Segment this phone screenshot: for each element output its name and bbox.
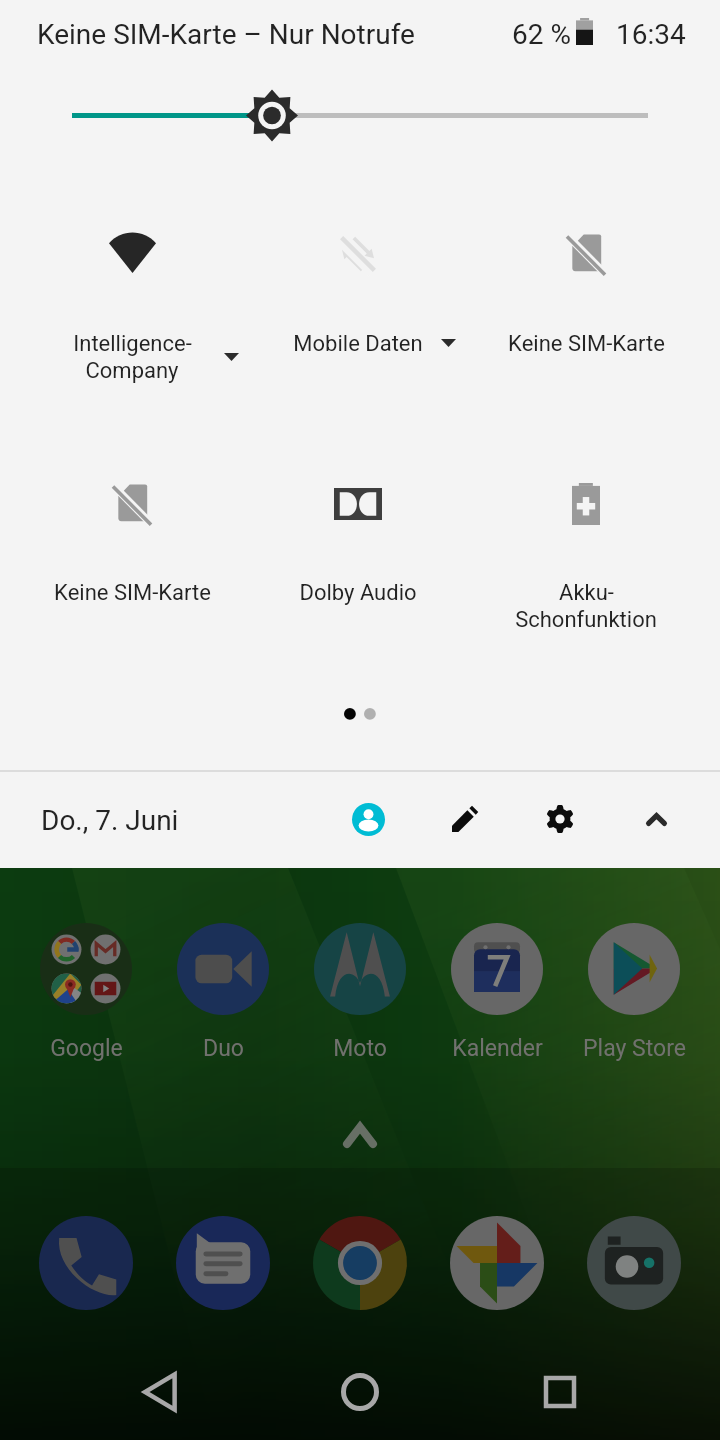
button[interactable]: Kalender <box>429 917 565 1065</box>
button[interactable] <box>473 442 699 612</box>
button[interactable]: Account <box>334 785 402 853</box>
button[interactable]: Moto <box>292 917 428 1065</box>
button[interactable]: Settings <box>526 785 594 853</box>
button[interactable]: Chrome <box>313 1216 407 1310</box>
staticText: Keine SIM-Karte <box>54 580 211 606</box>
button[interactable]: Photos <box>450 1216 544 1310</box>
button[interactable]: Camera <box>587 1216 681 1310</box>
staticText: Akku- <box>559 580 614 606</box>
button[interactable]: Duo <box>155 917 291 1065</box>
staticText: 62 % <box>512 18 571 51</box>
staticText: Do., 7. Juni <box>41 804 179 837</box>
staticText: Moto <box>333 1035 387 1062</box>
button[interactable]: Messages <box>176 1216 270 1310</box>
button[interactable]: Brightness <box>0 0 720 868</box>
button[interactable]: Google <box>18 917 154 1065</box>
staticText: Google <box>50 1035 123 1062</box>
staticText: 16:34 <box>616 18 686 51</box>
staticText: Kalender <box>452 1035 543 1062</box>
button[interactable]: Back <box>120 1344 200 1440</box>
button[interactable]: Play Store <box>566 917 702 1065</box>
button[interactable]: Collapse <box>622 785 690 853</box>
staticText: Company <box>85 358 179 384</box>
staticText: Intelligence- <box>73 331 192 357</box>
staticText: Keine SIM-Karte <box>508 331 665 357</box>
staticText: Schonfunktion <box>515 607 657 633</box>
staticText: Dolby Audio <box>299 580 417 606</box>
staticText: Play Store <box>583 1035 686 1062</box>
button[interactable]: Edit <box>430 785 498 853</box>
button[interactable] <box>473 192 699 362</box>
button[interactable]: All apps <box>330 1105 390 1165</box>
staticText: Mobile Daten <box>293 331 423 357</box>
button[interactable] <box>245 192 471 362</box>
staticText: Keine SIM-Karte – Nur Notrufe <box>37 18 415 51</box>
button[interactable] <box>19 192 245 362</box>
button[interactable] <box>19 442 245 612</box>
button[interactable]: Home <box>320 1344 400 1440</box>
button[interactable]: Phone <box>39 1216 133 1310</box>
button[interactable]: Recents <box>520 1344 600 1440</box>
staticText: Duo <box>203 1035 244 1062</box>
button[interactable] <box>245 442 471 612</box>
